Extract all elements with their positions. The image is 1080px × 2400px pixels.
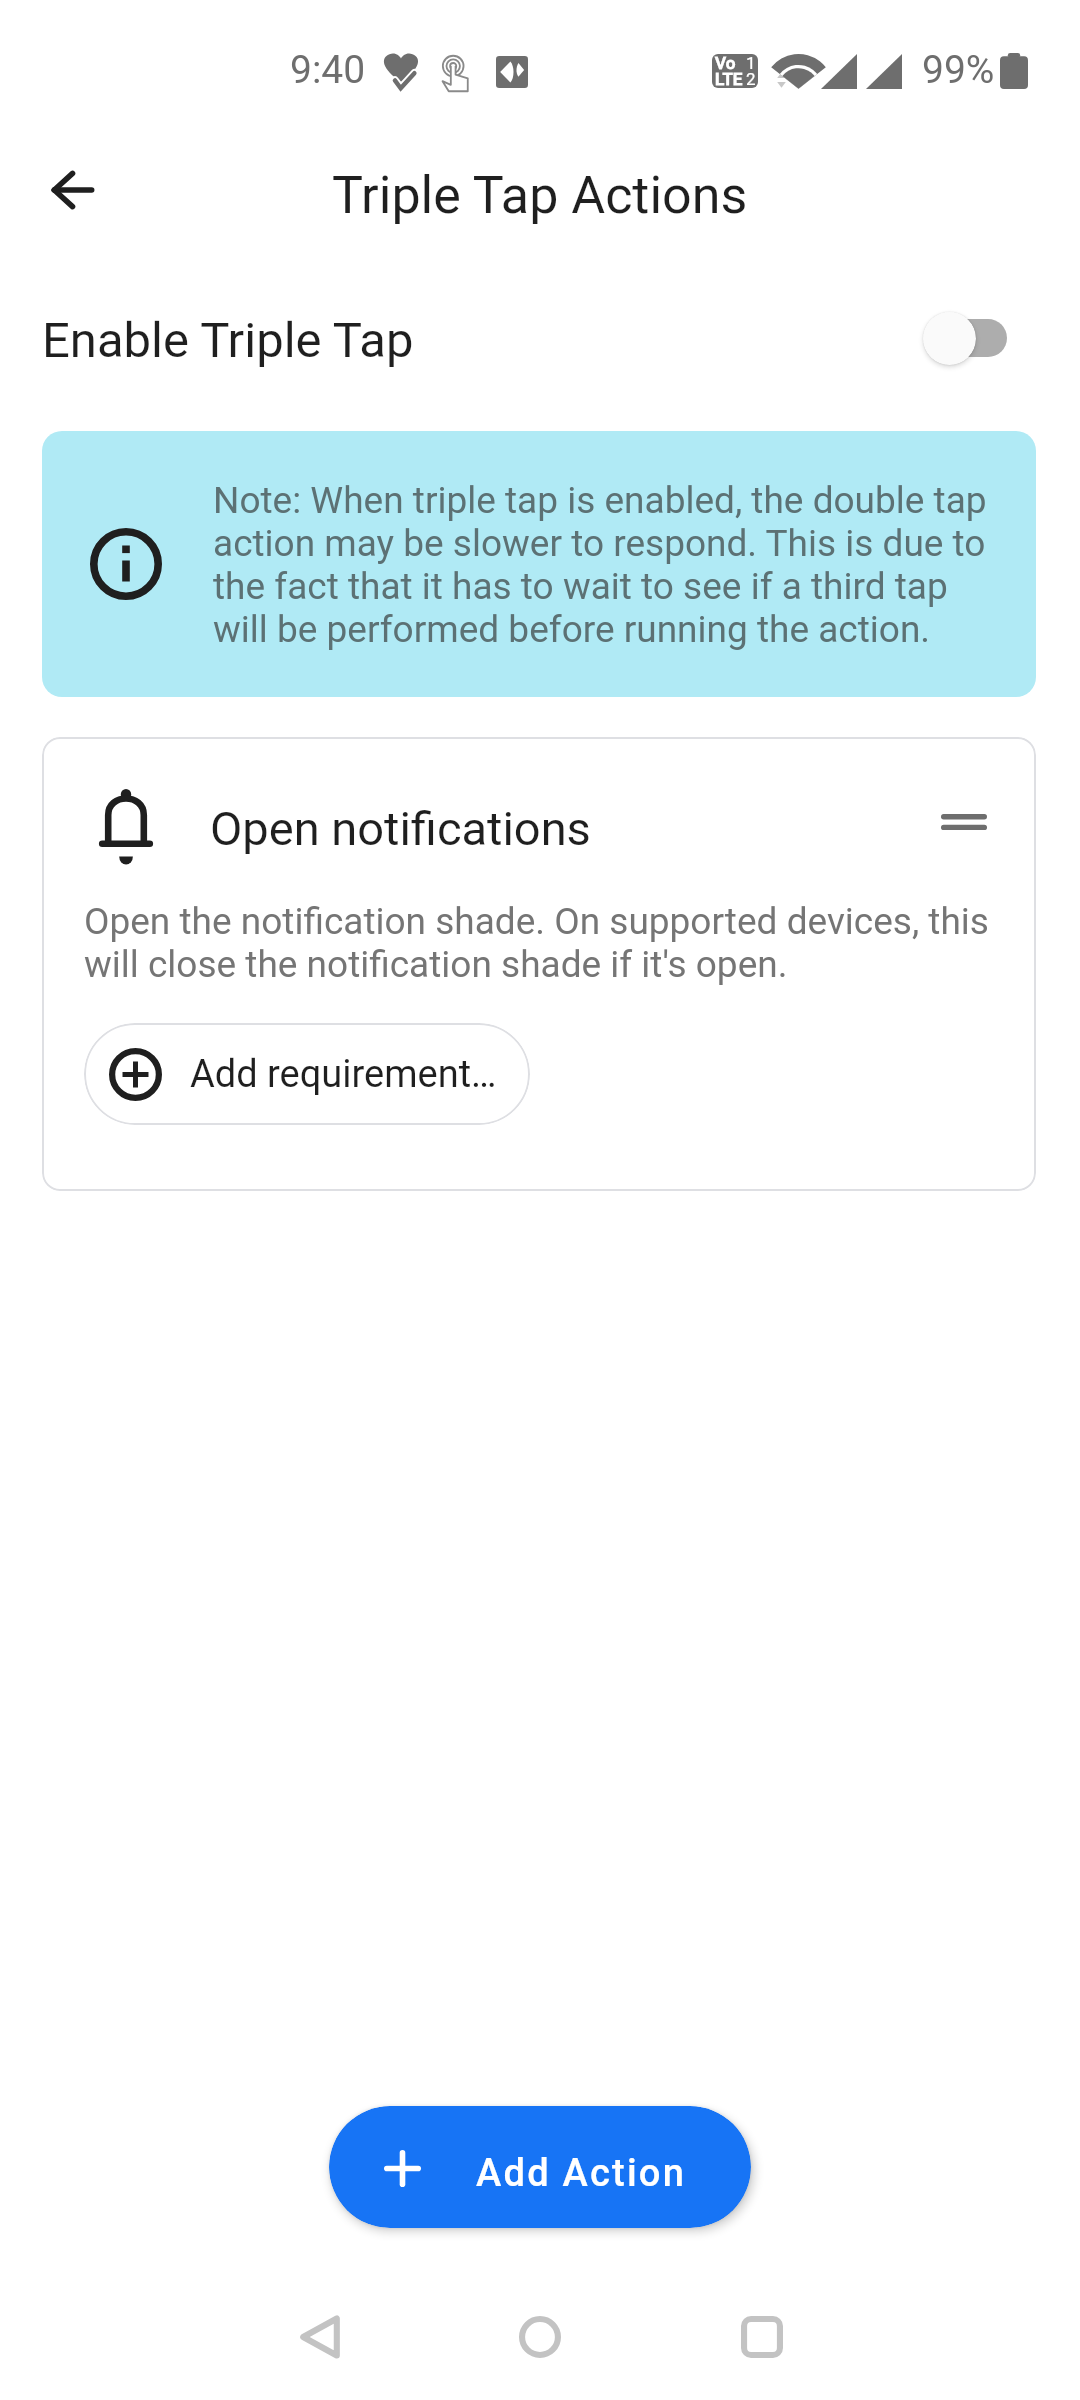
button[interactable]: Navigate up <box>30 147 116 233</box>
staticText: 2 <box>746 69 756 88</box>
button[interactable]: Open notifications <box>42 737 1036 1191</box>
button[interactable]: Enable Triple Tap <box>0 286 1080 390</box>
staticText: Open notifications <box>210 801 591 856</box>
staticText: 1 <box>746 54 756 73</box>
staticText: Note: When triple tap is enabled, the do… <box>213 479 1003 651</box>
staticText: 9:40 <box>290 47 366 93</box>
button[interactable]: Home <box>490 2286 590 2386</box>
staticText: Enable Triple Tap <box>42 312 414 369</box>
staticText: Add Action <box>476 2151 687 2196</box>
staticText: Open the notification shade. On supporte… <box>84 900 1004 986</box>
staticText: Triple Tap Actions <box>332 165 748 226</box>
staticText: Add requirement… <box>190 1052 497 1097</box>
staticText: Vo <box>715 54 736 73</box>
button[interactable]: Back <box>270 2286 370 2386</box>
button[interactable]: Add requirement… <box>84 1023 530 1125</box>
staticText: 99% <box>922 47 995 93</box>
button[interactable]: Recent apps <box>712 2286 812 2386</box>
button[interactable]: Add Action <box>329 2106 751 2228</box>
staticText: LTE <box>715 69 743 88</box>
